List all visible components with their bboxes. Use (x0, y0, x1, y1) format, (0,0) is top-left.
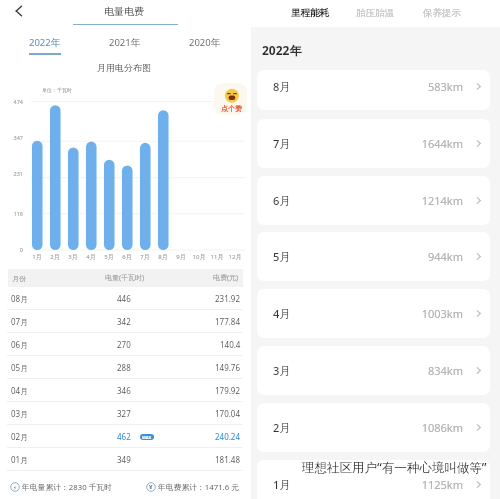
staticText: 462 (117, 431, 131, 442)
staticText: 170.04 (215, 408, 241, 419)
staticText: 点个赞 (221, 104, 242, 113)
staticText: 月份 (12, 274, 26, 283)
button[interactable]: 3月 (257, 346, 490, 395)
staticText: 4月 (273, 306, 291, 321)
staticText: MAX (142, 435, 152, 440)
button[interactable]: 08月 (0, 287, 248, 310)
button[interactable]: 04月 (0, 379, 248, 402)
staticText: 474 (6, 98, 23, 105)
staticText: 347 (6, 134, 23, 141)
staticText: 327 (117, 408, 131, 419)
staticText: 电量(千瓦时) (105, 273, 145, 283)
staticText: 04月 (11, 385, 29, 396)
staticText: 08月 (11, 293, 29, 304)
staticText: 1125km (403, 477, 463, 492)
staticText: 1086km (403, 420, 463, 435)
button[interactable]: 2020年 (178, 36, 232, 53)
staticText: 电量电费 (0, 5, 248, 18)
staticText: 5月 (99, 253, 119, 261)
staticText: 240.24 (215, 431, 241, 442)
staticText: 05月 (11, 362, 29, 373)
staticText: 140.4 (220, 339, 241, 350)
button[interactable]: 5月 (257, 232, 490, 281)
button[interactable]: 里程能耗 (291, 7, 329, 19)
staticText: 342 (117, 316, 131, 327)
staticText: 7月 (273, 136, 291, 151)
staticText: 06月 (11, 339, 29, 350)
staticText: 6月 (117, 253, 137, 261)
staticText: 1003km (403, 306, 463, 321)
button[interactable]: 02月 (0, 425, 248, 448)
staticText: 年电量累计：2830 千瓦时 (22, 482, 117, 493)
staticText: 胎压胎温 (356, 7, 394, 19)
button[interactable]: 胎压胎温 (356, 7, 394, 19)
staticText: 1月 (27, 253, 47, 261)
staticText: 177.84 (215, 316, 241, 327)
staticText: 7月 (135, 253, 155, 261)
staticText: 07月 (11, 316, 29, 327)
staticText: 0 (6, 246, 23, 253)
staticText: 2月 (273, 420, 291, 435)
staticText: 116 (6, 210, 23, 217)
button[interactable]: 2月 (257, 403, 490, 452)
staticText: 288 (117, 362, 131, 373)
staticText: 181.48 (215, 454, 241, 465)
button[interactable]: 7月 (257, 119, 490, 168)
staticText: 2020年 (189, 36, 221, 49)
button[interactable]: 保养提示 (423, 7, 461, 19)
staticText: 理想社区用户“有一种心境叫做等” (302, 459, 500, 476)
staticText: 2021年 (109, 36, 141, 49)
staticText: 10月 (189, 253, 209, 261)
staticText: 2月 (45, 253, 65, 261)
staticText: 179.92 (215, 385, 241, 396)
staticText: 446 (117, 293, 131, 304)
staticText: 270 (117, 339, 131, 350)
button[interactable]: 01月 (0, 448, 248, 471)
staticText: 1月 (273, 477, 291, 492)
button[interactable]: 6月 (257, 176, 490, 225)
staticText: 2022年 (262, 42, 302, 58)
staticText: 6月 (273, 193, 291, 208)
staticText: 02月 (11, 431, 29, 442)
staticText: 9月 (171, 253, 191, 261)
staticText: ⚡ (13, 484, 18, 491)
staticText: 年电费累计：1471.6 元 (158, 482, 248, 493)
staticText: 231 (6, 170, 23, 177)
staticText: 电费(元) (213, 273, 239, 283)
staticText: 01月 (11, 454, 29, 465)
button[interactable]: 06月 (0, 333, 248, 356)
staticText: 3月 (63, 253, 83, 261)
staticText: 149.76 (215, 362, 241, 373)
staticText: 保养提示 (423, 7, 461, 19)
staticText: 11月 (207, 253, 227, 261)
button[interactable]: 2021年 (98, 36, 152, 53)
staticText: 944km (403, 249, 463, 264)
staticText: 346 (117, 385, 131, 396)
staticText: 5月 (273, 249, 291, 264)
staticText: ¥ (149, 483, 153, 491)
staticText: 单位：千瓦时 (42, 87, 72, 93)
staticText: 8月 (273, 79, 291, 94)
staticText: 03月 (11, 408, 29, 419)
button[interactable]: Back (8, 0, 30, 22)
staticText: 834km (403, 363, 463, 378)
staticText: 2022年 (29, 36, 61, 49)
button[interactable]: 05月 (0, 356, 248, 379)
staticText: 里程能耗 (291, 7, 329, 19)
staticText: 1214km (403, 193, 463, 208)
button[interactable]: 8月 (257, 70, 490, 110)
staticText: 月用电分布图 (0, 62, 248, 73)
staticText: 8月 (153, 253, 173, 261)
staticText: 349 (117, 454, 131, 465)
staticText: 231.92 (215, 293, 241, 304)
button[interactable]: 03月 (0, 402, 248, 425)
staticText: 4月 (81, 253, 101, 261)
button[interactable]: 07月 (0, 310, 248, 333)
staticText: 583km (403, 79, 463, 94)
button[interactable]: 1月 (257, 460, 490, 499)
button[interactable]: 2022年 (18, 36, 72, 55)
staticText: 3月 (273, 363, 291, 378)
button[interactable]: 4月 (257, 289, 490, 338)
staticText: 12月 (225, 253, 245, 261)
staticText: 1644km (403, 136, 463, 151)
